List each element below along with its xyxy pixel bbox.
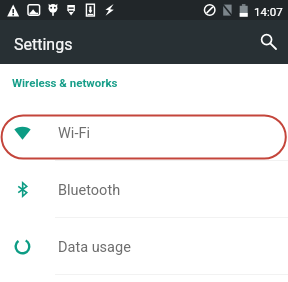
staticText: 14:07 [254, 5, 283, 18]
button[interactable]: Data usage [0, 218, 288, 275]
staticText: Settings [14, 35, 73, 54]
staticText: Data usage [58, 239, 131, 256]
button[interactable]: Bluetooth [0, 161, 288, 218]
staticText: Wireless & networks [12, 76, 118, 89]
staticText: Bluetooth [58, 182, 121, 199]
button[interactable]: Search [252, 25, 285, 58]
staticText: Wi-Fi [58, 125, 90, 142]
button[interactable]: Wi-Fi [0, 104, 288, 161]
